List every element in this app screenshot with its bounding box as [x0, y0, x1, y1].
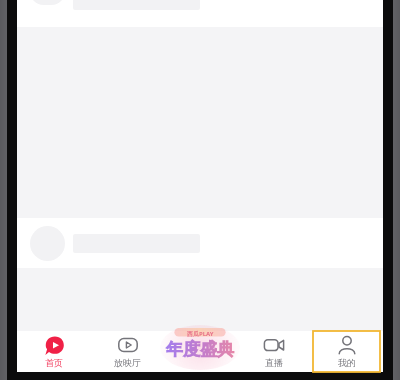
staticText: 西瓜PLAY	[187, 330, 214, 338]
button[interactable]: 直播	[237, 331, 310, 372]
button[interactable]: 西瓜PLAY 年度盛典	[160, 320, 240, 370]
staticText: 我的	[338, 357, 356, 368]
staticText: 年度盛典	[166, 339, 234, 360]
button[interactable]: 我的	[310, 331, 383, 372]
staticText: 首页	[45, 357, 63, 368]
button[interactable]: 放映厅	[91, 331, 164, 372]
staticText: 直播	[265, 357, 283, 368]
button[interactable]: 首页	[17, 331, 91, 372]
staticText: 放映厅	[114, 357, 141, 368]
